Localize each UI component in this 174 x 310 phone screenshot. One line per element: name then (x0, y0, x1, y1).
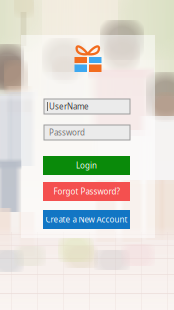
staticText: Login (76, 160, 97, 171)
staticText: Password (49, 127, 85, 138)
staticText: UserName (49, 101, 89, 112)
staticText: Forgot Password? (53, 186, 119, 197)
button[interactable]: Login (43, 156, 130, 175)
button[interactable]: Create a New Account (43, 210, 130, 229)
staticText: Create a New Account (45, 214, 127, 225)
button[interactable]: Forgot Password? (43, 182, 130, 201)
button[interactable]: Password (44, 125, 130, 140)
button[interactable]: UserName (44, 99, 130, 114)
